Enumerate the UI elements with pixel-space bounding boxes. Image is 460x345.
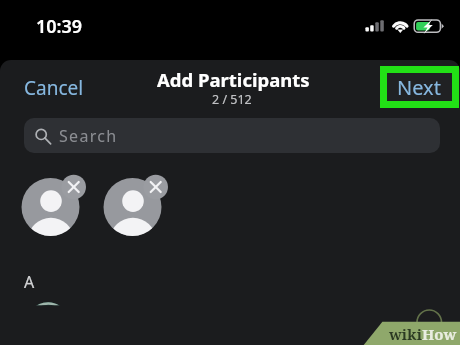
button[interactable]: Next	[387, 73, 452, 101]
staticText: Add Participants	[157, 67, 310, 92]
staticText: Search	[59, 125, 118, 147]
button[interactable]: Search	[24, 118, 440, 153]
staticText: wiki	[389, 324, 422, 344]
button[interactable]	[0, 301, 460, 345]
button[interactable]: Cancel	[17, 68, 91, 108]
button[interactable]: Remove participant	[102, 175, 168, 238]
staticText: A	[24, 271, 35, 293]
staticText: 2 / 512	[212, 91, 252, 108]
staticText: How	[422, 324, 457, 344]
staticText: Next	[397, 74, 441, 101]
staticText: 10:39	[36, 14, 83, 39]
button[interactable]: Remove participant	[20, 175, 86, 238]
staticText: Cancel	[24, 75, 84, 101]
